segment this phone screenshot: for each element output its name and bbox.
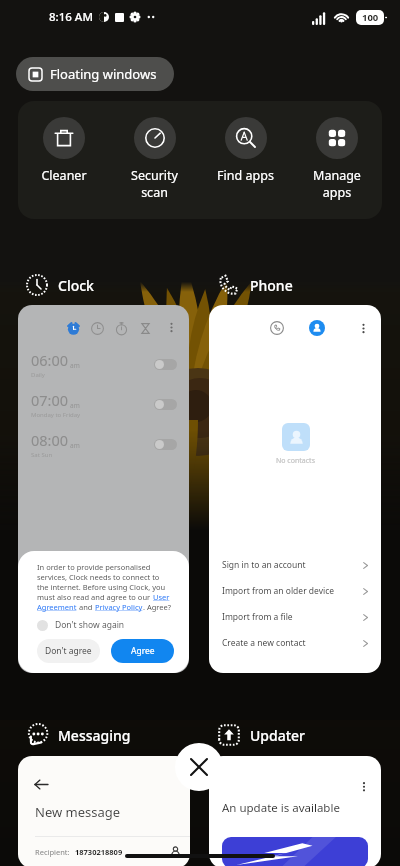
button[interactable]: Security scan bbox=[109, 117, 200, 219]
staticText: Security scan bbox=[131, 167, 178, 200]
staticText: am bbox=[70, 441, 80, 450]
staticText: 06:00 bbox=[31, 350, 69, 370]
button[interactable]: Back bbox=[18, 756, 190, 866]
button[interactable]: Sign in to an account bbox=[222, 552, 370, 578]
staticText: am bbox=[70, 361, 80, 370]
staticText: and bbox=[77, 602, 95, 612]
button[interactable]: Import from a file bbox=[222, 604, 370, 630]
staticText: Import from a file bbox=[222, 611, 361, 623]
button[interactable]: Cleaner bbox=[18, 117, 109, 219]
button[interactable]: Messaging bbox=[26, 724, 131, 746]
staticText: Recipient: bbox=[35, 847, 70, 857]
staticText: 07:00 bbox=[31, 390, 69, 410]
staticText: User bbox=[153, 592, 170, 602]
staticText: 08:00 bbox=[31, 430, 69, 450]
button[interactable]: Recents bbox=[209, 305, 381, 673]
button[interactable]: Floating windows bbox=[16, 57, 174, 91]
staticText: Cleaner bbox=[41, 167, 87, 184]
staticText: Messaging bbox=[58, 726, 131, 745]
staticText: New message bbox=[35, 803, 121, 821]
button[interactable]: Updater bbox=[218, 724, 306, 746]
staticText: Sat Sun bbox=[31, 451, 53, 459]
staticText: the internet. Before using Clock, you bbox=[37, 582, 166, 592]
button[interactable]: Recents bbox=[266, 317, 288, 339]
staticText: Clock bbox=[58, 276, 94, 295]
button[interactable]: More options bbox=[209, 756, 381, 866]
button[interactable]: More options bbox=[358, 781, 370, 793]
button[interactable]: Don't agree bbox=[37, 639, 100, 663]
button[interactable]: More options bbox=[18, 305, 189, 673]
staticText: Don't show again bbox=[55, 619, 125, 631]
button[interactable]: Phone bbox=[218, 274, 293, 296]
staticText: Sign in to an account bbox=[222, 559, 361, 571]
button[interactable]: Import from an older device bbox=[222, 578, 370, 604]
staticText: Updater bbox=[250, 726, 306, 745]
staticText: Privacy Policy bbox=[95, 602, 143, 612]
staticText: Manage apps bbox=[313, 167, 361, 200]
staticText: am bbox=[70, 401, 80, 410]
staticText: In order to provide personalised bbox=[37, 562, 151, 572]
staticText: . Agree? bbox=[143, 602, 172, 612]
staticText: Floating windows bbox=[50, 65, 157, 83]
staticText: 100 bbox=[362, 11, 379, 24]
staticText: 18730218809 bbox=[75, 847, 123, 857]
staticText: services, Clock needs to connect to bbox=[37, 572, 160, 582]
button[interactable]: Agree bbox=[111, 639, 174, 663]
staticText: Agreement bbox=[37, 602, 77, 612]
button[interactable]: Back bbox=[35, 778, 48, 791]
staticText: An update is available bbox=[222, 800, 340, 816]
staticText: must also read and agree to our bbox=[37, 592, 153, 602]
button[interactable]: Close all bbox=[175, 743, 223, 791]
button[interactable]: Clock bbox=[26, 274, 94, 296]
button[interactable]: More options bbox=[165, 321, 178, 334]
button[interactable]: Manage apps bbox=[291, 117, 382, 219]
button[interactable]: Create a new contact bbox=[222, 630, 370, 656]
staticText: No contacts bbox=[276, 456, 315, 466]
staticText: Daily bbox=[31, 371, 45, 379]
button[interactable]: More options bbox=[357, 322, 370, 335]
staticText: Create a new contact bbox=[222, 637, 361, 649]
button[interactable]: Contacts bbox=[306, 317, 328, 339]
staticText: Agree bbox=[131, 645, 155, 657]
staticText: Import from an older device bbox=[222, 585, 361, 597]
staticText: Don't agree bbox=[45, 645, 92, 657]
button[interactable]: Find apps bbox=[200, 117, 291, 219]
staticText: Find apps bbox=[217, 167, 274, 184]
staticText: 8:16 AM bbox=[49, 9, 93, 25]
staticText: Phone bbox=[250, 276, 293, 295]
staticText: Monday to Friday bbox=[31, 411, 81, 419]
